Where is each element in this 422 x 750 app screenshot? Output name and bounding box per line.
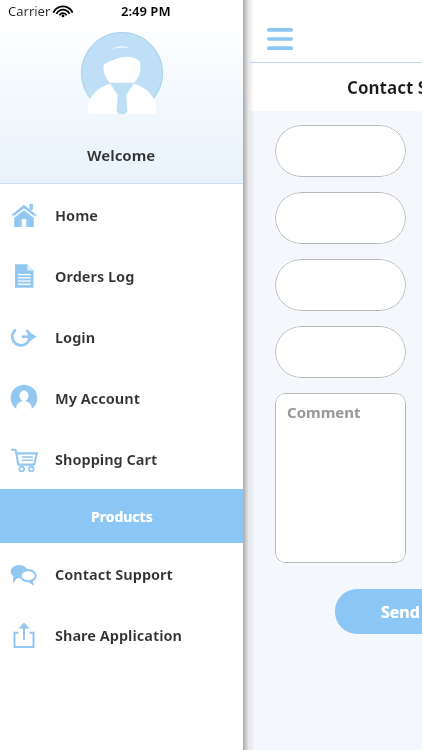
button[interactable] xyxy=(275,326,406,378)
staticText: Welcome xyxy=(87,145,156,165)
staticText: Shopping Cart xyxy=(55,449,158,469)
staticText: Carrier xyxy=(8,2,51,20)
button[interactable]: Share Application xyxy=(0,604,243,665)
button[interactable]: Send xyxy=(335,589,422,634)
button[interactable]: Menu xyxy=(262,23,298,55)
staticText: Orders Log xyxy=(55,266,135,286)
button[interactable]: Shopping Cart xyxy=(0,428,243,489)
staticText: Comment xyxy=(287,402,361,422)
staticText: Login xyxy=(55,327,96,347)
staticText: Products xyxy=(91,507,153,526)
button[interactable]: My Account xyxy=(0,367,243,428)
button[interactable]: Orders Log xyxy=(0,245,243,306)
staticText: My Account xyxy=(55,388,140,408)
staticText: Home xyxy=(55,205,98,225)
button[interactable] xyxy=(275,125,406,177)
staticText: Share Application xyxy=(55,625,183,645)
button[interactable] xyxy=(275,259,406,311)
staticText: Contact Support xyxy=(55,564,173,584)
button[interactable]: Products xyxy=(0,489,243,543)
staticText: Contact Support xyxy=(347,76,422,99)
button[interactable] xyxy=(275,192,406,244)
button[interactable]: Home xyxy=(0,184,243,245)
button[interactable]: Comment xyxy=(275,393,406,563)
staticText: Send xyxy=(381,601,420,623)
staticText: 2:49 PM xyxy=(121,2,171,20)
button[interactable]: Contact Support xyxy=(0,543,243,604)
button[interactable]: Login xyxy=(0,306,243,367)
